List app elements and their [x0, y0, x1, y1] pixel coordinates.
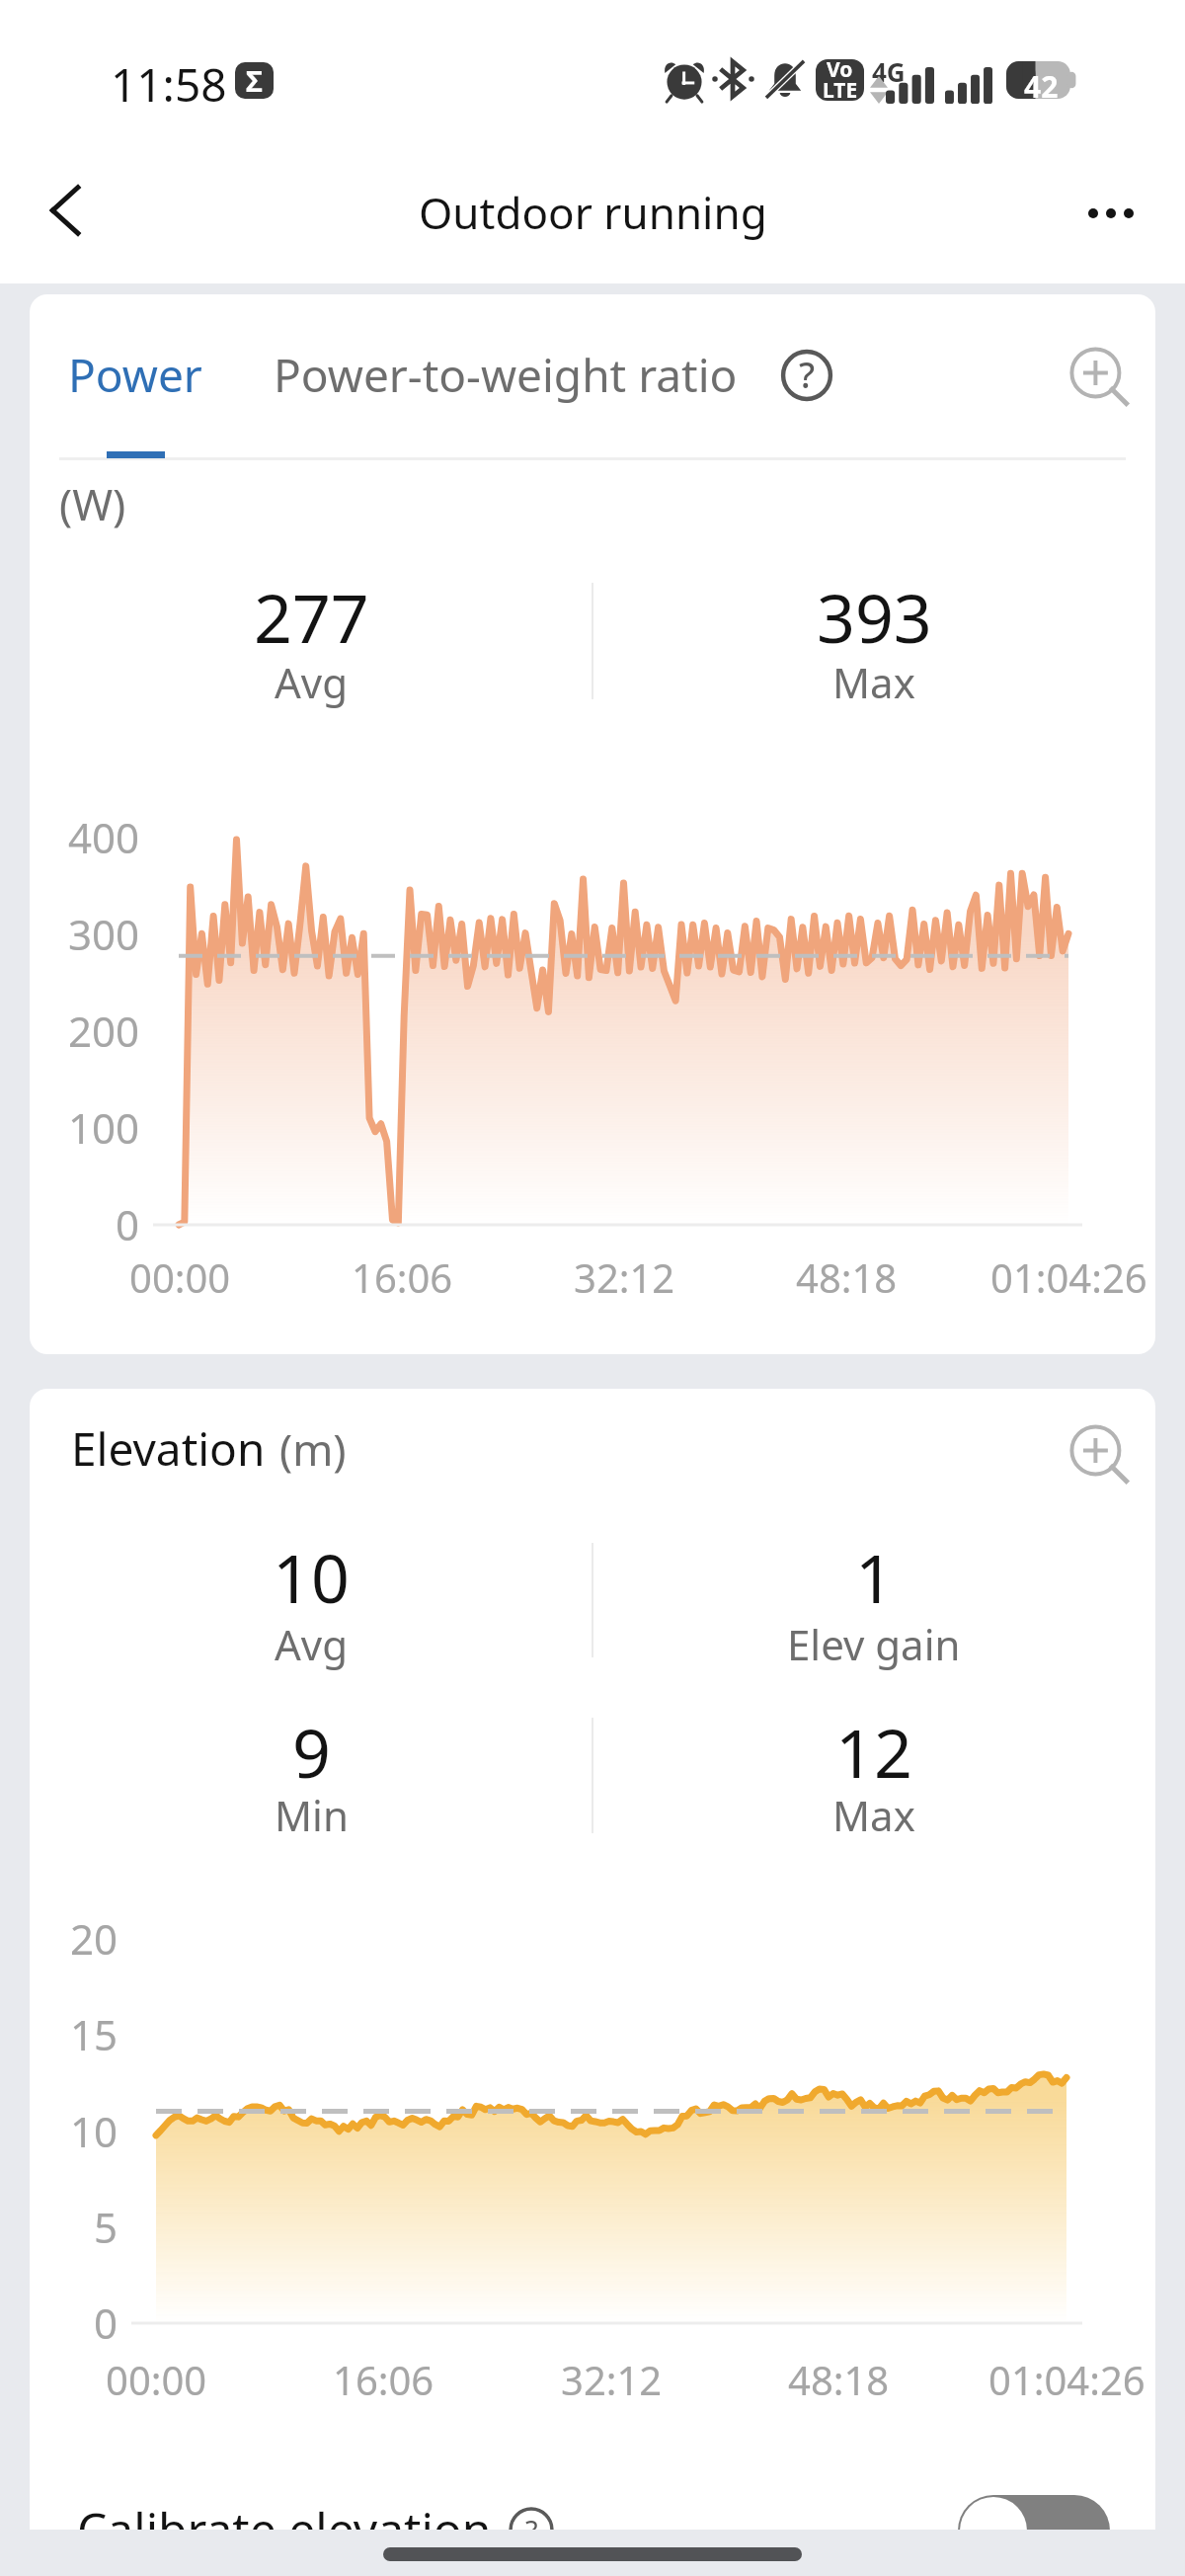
staticText: 01:04:26	[988, 2353, 1145, 2406]
staticText: Power-to-weight ratio	[274, 344, 738, 406]
staticText: Vo	[827, 59, 853, 84]
staticText: 1	[855, 1531, 894, 1623]
staticText: 12	[835, 1706, 912, 1798]
staticText: 15	[70, 2006, 118, 2062]
staticText: Calibrate elevation	[77, 2497, 492, 2561]
staticText: Min	[275, 1787, 349, 1843]
staticText: Power	[68, 344, 202, 406]
staticText: 48:18	[796, 1250, 898, 1304]
staticText: Σ	[246, 62, 263, 98]
staticText: (W)	[59, 474, 126, 533]
staticText: 300	[68, 906, 140, 962]
staticText: 0	[116, 1196, 140, 1252]
staticText: LTE	[823, 76, 858, 101]
staticText: Outdoor running	[419, 183, 767, 242]
staticText: 9	[292, 1706, 331, 1798]
staticText: 32:12	[561, 2353, 663, 2406]
button[interactable]: Back	[10, 156, 118, 265]
staticText: 393	[817, 571, 932, 663]
staticText: 277	[254, 571, 369, 663]
staticText: 42	[1024, 66, 1059, 104]
staticText: Avg	[275, 654, 349, 710]
staticText: 11:58	[111, 53, 227, 116]
staticText: Avg	[275, 1616, 349, 1672]
staticText: (m)	[279, 1419, 347, 1479]
button[interactable]: Zoom in	[1068, 1423, 1130, 1485]
staticText: Max	[832, 1787, 915, 1843]
button[interactable]: Calibrate elevation toggle	[958, 2495, 1110, 2566]
staticText: 0	[94, 2294, 118, 2351]
staticText: 4G	[872, 54, 906, 89]
button[interactable]: More options	[1057, 159, 1165, 268]
staticText: 400	[68, 809, 140, 865]
staticText: Max	[832, 654, 915, 710]
button[interactable]: Help	[778, 347, 835, 404]
staticText: 10	[273, 1531, 350, 1623]
staticText: 16:06	[333, 2353, 434, 2406]
staticText: 00:00	[129, 1250, 231, 1304]
staticText: 100	[68, 1099, 140, 1156]
staticText: Elev gain	[787, 1616, 961, 1672]
button[interactable]: Zoom in	[1068, 346, 1130, 407]
staticText: 48:18	[788, 2353, 890, 2406]
button[interactable]: Power-to-weight ratio	[254, 314, 757, 436]
button[interactable]: Power	[48, 314, 222, 436]
staticText: 20	[70, 1910, 118, 1967]
staticText: ?	[799, 351, 816, 399]
staticText: 01:04:26	[990, 1250, 1147, 1304]
staticText: 32:12	[574, 1250, 675, 1304]
staticText: ?	[525, 2511, 538, 2549]
staticText: 10	[70, 2103, 118, 2159]
staticText: 16:06	[352, 1250, 453, 1304]
staticText: 5	[94, 2199, 118, 2255]
staticText: Elevation	[71, 1417, 266, 1480]
staticText: 200	[68, 1003, 140, 1059]
staticText: 00:00	[106, 2353, 207, 2406]
